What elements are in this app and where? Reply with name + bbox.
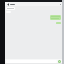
- button[interactable]: [50, 15, 61, 20]
- button[interactable]: [56, 22, 61, 24]
- button[interactable]: [6, 7, 15, 10]
- button[interactable]: Conversation header: [5, 2, 62, 6]
- button[interactable]: Send: [58, 60, 61, 63]
